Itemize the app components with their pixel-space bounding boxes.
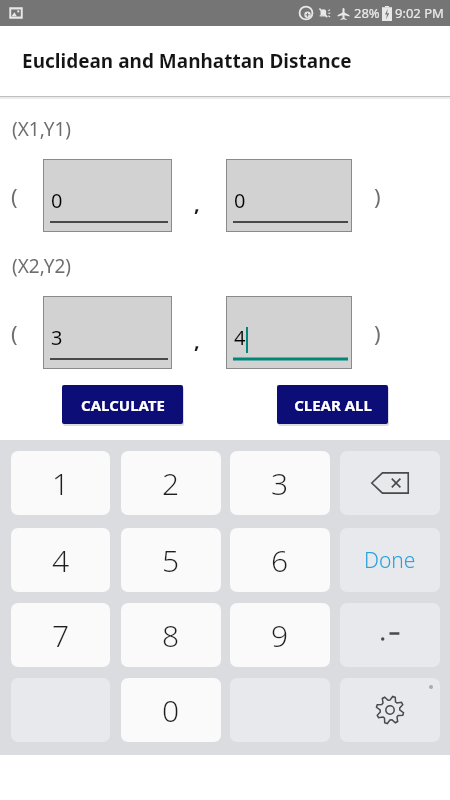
button[interactable]: Backspace	[340, 451, 440, 515]
staticText: 7	[52, 615, 70, 656]
staticText: ,	[194, 190, 200, 217]
button[interactable]: 0	[226, 159, 352, 232]
button[interactable]: 2	[121, 451, 221, 515]
staticText: Euclidean and Manhattan Distance	[22, 48, 352, 74]
staticText: )	[374, 318, 381, 348]
staticText: 0	[234, 187, 246, 214]
staticText: 0	[51, 187, 63, 214]
staticText: 4	[234, 324, 246, 351]
button[interactable]: 0	[121, 678, 221, 742]
staticText: 4	[52, 540, 70, 581]
button[interactable]: Done	[340, 528, 440, 592]
button[interactable]: 4	[11, 528, 110, 592]
button[interactable]: Decimal and minus	[340, 603, 440, 667]
button[interactable]: 6	[230, 528, 330, 592]
staticText: CALCULATE	[81, 395, 165, 415]
staticText: Done	[364, 546, 416, 575]
button[interactable]: 3	[43, 296, 172, 369]
staticText: 8	[162, 615, 180, 656]
button[interactable]: 0	[43, 159, 172, 232]
staticText: 28%	[354, 4, 380, 22]
staticText: 3	[51, 324, 63, 351]
button[interactable]: CLEAR ALL	[277, 385, 388, 424]
button[interactable]: 4	[226, 296, 352, 369]
staticText: 5	[162, 540, 180, 581]
button[interactable]: Keyboard settings	[340, 678, 440, 742]
staticText: CLEAR ALL	[294, 395, 372, 415]
button[interactable]: 7	[11, 603, 110, 667]
staticText: (	[11, 318, 18, 348]
staticText: 9	[271, 615, 289, 656]
staticText: 0	[162, 690, 180, 731]
button[interactable]: 8	[121, 603, 221, 667]
staticText: 2	[162, 463, 180, 504]
staticText: 9:02 PM	[395, 4, 444, 22]
staticText: 1	[52, 463, 70, 504]
staticText: ,	[194, 327, 200, 354]
staticText: 6	[271, 540, 289, 581]
button[interactable]: 1	[11, 451, 110, 515]
button[interactable]: 9	[230, 603, 330, 667]
button[interactable]: CALCULATE	[62, 385, 183, 424]
staticText: (	[11, 181, 18, 211]
button[interactable]: 3	[230, 451, 330, 515]
staticText: (X1,Y1)	[12, 116, 71, 142]
staticText: (X2,Y2)	[12, 253, 71, 279]
staticText: 3	[271, 463, 289, 504]
button[interactable]: 5	[121, 528, 221, 592]
staticText: )	[374, 181, 381, 211]
